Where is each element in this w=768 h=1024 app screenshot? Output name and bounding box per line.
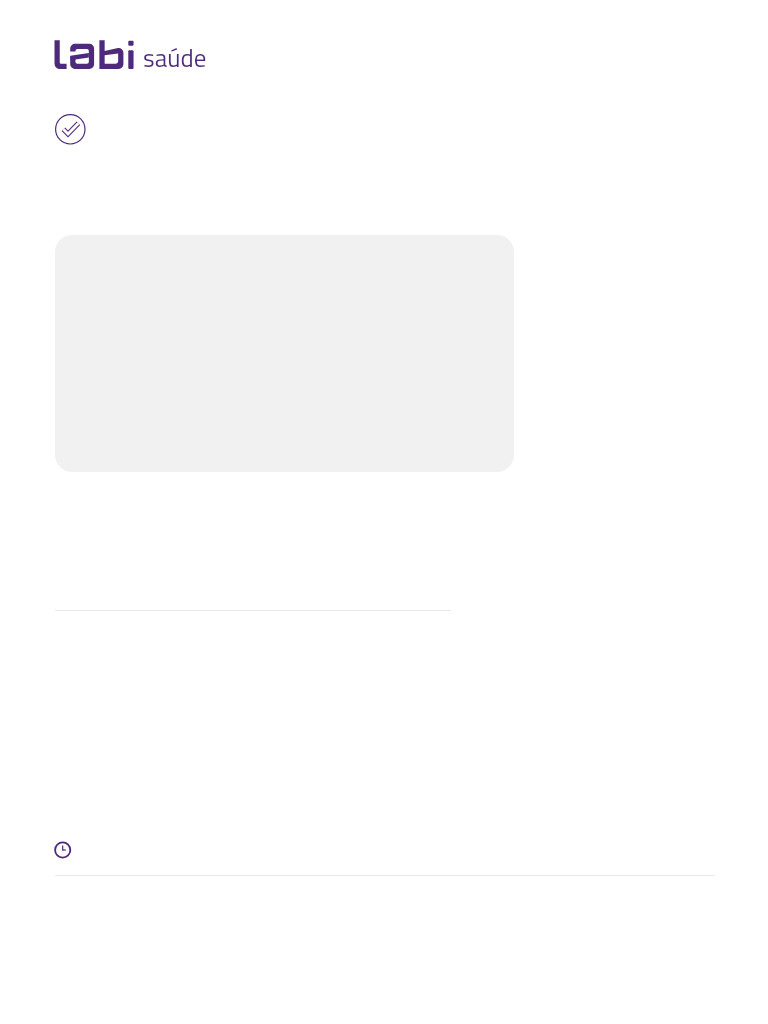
button[interactable]: Verified (55, 114, 86, 145)
staticText: saúde (143, 39, 207, 71)
button[interactable]: Schedule (54, 841, 72, 859)
button[interactable]: labi saude (54, 39, 209, 71)
